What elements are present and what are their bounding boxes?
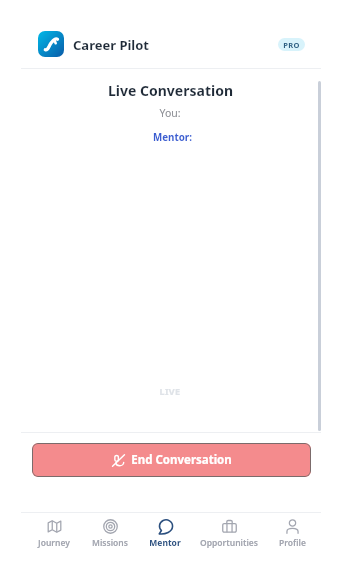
button[interactable]: PRO [278,38,305,51]
staticText: Mentor: [153,131,192,144]
staticText: Mentor [149,537,181,549]
staticText: Profile [279,537,306,549]
staticText: End Conversation [131,452,232,468]
staticText: Missions [92,537,128,549]
staticText: Live Conversation [108,81,233,100]
staticText: PRO [283,40,300,50]
staticText: Career Pilot [73,36,149,54]
button[interactable]: Opportunities [196,516,262,552]
button[interactable]: Profile [259,516,325,552]
staticText: Journey [38,537,70,549]
button[interactable]: End Conversation [32,443,311,477]
button[interactable]: Journey [21,516,87,552]
button[interactable]: Missions [77,516,143,552]
button[interactable]: Career Pilot home [38,31,64,57]
staticText: You: [159,106,181,120]
button[interactable]: Mentor [132,516,198,552]
staticText: Opportunities [200,537,258,549]
staticText: LIVE [159,385,181,397]
